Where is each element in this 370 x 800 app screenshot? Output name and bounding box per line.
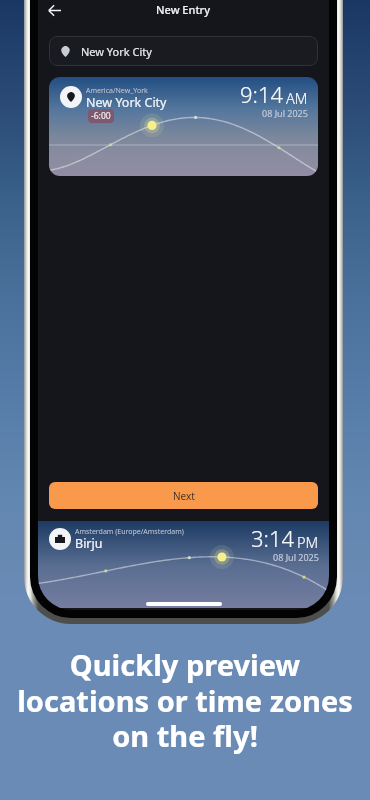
staticText: -6:00: [91, 110, 111, 122]
button[interactable]: Next: [49, 482, 318, 509]
staticText: America/New_York: [86, 86, 148, 96]
staticText: Amsterdam (Europe/Amsterdam): [75, 527, 184, 537]
staticText: Birju: [75, 535, 103, 552]
staticText: New York City: [86, 94, 167, 111]
staticText: PM: [297, 532, 319, 552]
staticText: 08 Jul 2025: [262, 107, 308, 119]
button[interactable]: America/New_York: [49, 77, 318, 176]
staticText: AM: [286, 88, 308, 108]
button[interactable]: Amsterdam (Europe/Amsterdam): [38, 521, 329, 608]
staticText: 9:14: [240, 79, 284, 109]
staticText: 08 Jul 2025: [273, 551, 319, 563]
staticText: New Entry: [156, 2, 211, 17]
staticText: Quickly preview locations or time zones …: [0, 645, 370, 755]
staticText: 3:14: [251, 523, 295, 553]
staticText: Next: [173, 489, 195, 503]
button[interactable]: New York City: [49, 36, 318, 66]
staticText: New York City: [81, 44, 152, 59]
button[interactable]: Back: [41, 0, 67, 23]
